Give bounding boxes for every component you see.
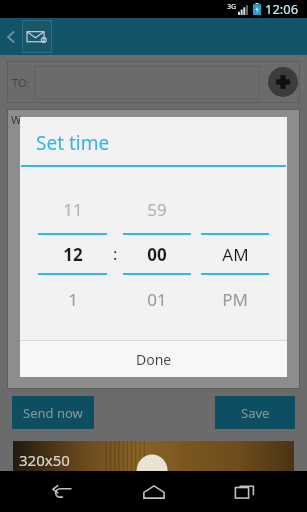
staticText: W xyxy=(11,112,22,127)
button[interactable]: Save xyxy=(215,396,295,429)
staticText: TO: xyxy=(12,75,30,90)
staticText: 12 xyxy=(63,243,83,266)
button[interactable]: Done xyxy=(20,341,287,377)
button[interactable]: AM xyxy=(201,235,269,273)
staticText: 1 xyxy=(68,288,78,311)
staticText: 59 xyxy=(147,198,167,221)
button[interactable]: Back xyxy=(0,18,22,55)
staticText: AM xyxy=(222,243,249,266)
staticText: 11 xyxy=(63,198,83,221)
button[interactable]: Secure mail xyxy=(22,20,52,53)
button[interactable]: PM xyxy=(201,281,269,317)
staticText: 320x50 xyxy=(19,450,70,470)
button[interactable]: 1 xyxy=(38,281,107,317)
button[interactable]: Send now xyxy=(12,396,94,429)
staticText: : xyxy=(113,243,118,265)
button[interactable]: 59 xyxy=(123,191,191,227)
button[interactable]: Recent apps xyxy=(215,471,275,512)
staticText: 00 xyxy=(147,243,167,266)
staticText: Done xyxy=(136,350,172,369)
button[interactable]: Back xyxy=(32,471,92,512)
button[interactable]: 00 xyxy=(123,235,191,273)
staticText: 01 xyxy=(147,288,167,311)
button[interactable]: Add recipient xyxy=(268,67,298,97)
button[interactable]: 11 xyxy=(38,191,107,227)
button[interactable]: Advertisement xyxy=(13,441,294,471)
staticText: 12:06 xyxy=(265,0,299,18)
button[interactable]: W xyxy=(7,109,300,389)
button[interactable]: 01 xyxy=(123,281,191,317)
staticText: Set time xyxy=(36,130,110,156)
staticText: PM xyxy=(222,288,248,311)
staticText: Send now xyxy=(23,404,83,422)
staticText: 3G xyxy=(227,2,237,12)
staticText: Save xyxy=(241,404,270,422)
button[interactable]: 12 xyxy=(38,235,107,273)
button[interactable]: Home xyxy=(124,471,184,512)
